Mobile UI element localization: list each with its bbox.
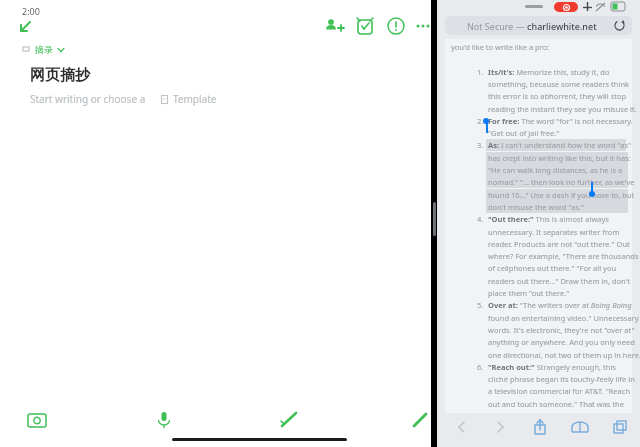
staticText: Its/it's: Memorize this, study it, do <box>488 67 610 77</box>
staticText: As: I can't understand how the word "as" <box>488 140 632 150</box>
button[interactable]: More options <box>411 14 435 38</box>
staticText: found an entertaining video." Unnecessar… <box>488 313 639 323</box>
staticText: place them "out there." <box>488 288 570 298</box>
button[interactable]: Template <box>160 92 217 106</box>
staticText: a television commercial for AT&T. "Reach <box>488 386 631 396</box>
staticText: Start writing or choose a <box>30 92 146 106</box>
staticText: 摘录 <box>35 44 53 55</box>
staticText: 5. <box>477 300 484 310</box>
button[interactable]: 摘录 <box>22 44 65 55</box>
staticText: Over at: "The writers over at Boing Boin… <box>488 300 632 310</box>
staticText: consuming monster. It's dragged out ever… <box>488 423 639 433</box>
staticText: 3. <box>477 140 484 150</box>
staticText: slogan. Now it's grown into an all- <box>488 411 607 421</box>
staticText: 1. <box>477 67 484 77</box>
button[interactable]: Camera <box>25 408 49 432</box>
button[interactable]: Bookmarks <box>569 416 591 438</box>
staticText: "Reach out:" Strangely enough, this <box>488 362 616 372</box>
staticText: Template <box>173 92 217 106</box>
staticText: readers out there…" Draw them in, don't <box>488 276 631 286</box>
button[interactable]: Attach <box>408 408 432 432</box>
button: Back <box>451 416 473 438</box>
staticText: don't misuse the word "as." <box>488 202 585 212</box>
staticText: 2:00 <box>22 5 40 17</box>
button[interactable]: Share <box>529 416 551 438</box>
staticText: you'd like to write like a pro: <box>451 42 550 52</box>
staticText: reader. Products are not "out there." Ou… <box>488 239 630 249</box>
staticText: 6. <box>477 362 484 372</box>
button[interactable]: Back <box>12 14 38 40</box>
staticText: has crept into writing like this, but it… <box>488 153 631 163</box>
staticText: unnecessary. It separates writer from <box>488 227 620 237</box>
button[interactable]: Draw <box>277 408 301 432</box>
staticText: "Out there:" This is almost always <box>488 214 609 224</box>
staticText: 2. <box>477 116 484 126</box>
staticText: 4. <box>477 214 484 224</box>
staticText: Not Secure — charliewhite.net <box>467 20 597 32</box>
staticText: where? For example, "There are thousands <box>488 251 639 261</box>
staticText: nomad." "… then look no further, as we'v… <box>488 177 635 187</box>
staticText: found 10…" Use a dash if you have to, bu… <box>488 190 635 200</box>
button[interactable]: Add people <box>322 14 346 38</box>
staticText: "Get out of jail free." <box>488 128 560 138</box>
button: Forward <box>489 416 511 438</box>
staticText: For free: The word "for" is not necessar… <box>488 116 633 126</box>
staticText: something, because some readers think <box>488 79 630 89</box>
staticText: out and touch someone." That was the <box>488 399 624 409</box>
staticText: words. It's electronic, they're not "ove… <box>488 325 635 335</box>
staticText: of cellphones out there." "For all you <box>488 263 617 273</box>
button[interactable]: Not Secure — charliewhite.net <box>445 16 632 35</box>
button[interactable]: Reminder <box>353 14 377 38</box>
staticText: cliché phrase began its touchy-feely lif… <box>488 374 635 384</box>
staticText: reading the instant they see you misuse … <box>488 104 637 114</box>
staticText: 网页摘抄 <box>30 66 90 85</box>
button[interactable]: Info <box>384 14 408 38</box>
staticText: anything or anywhere. And you only need <box>488 337 635 347</box>
staticText: "He can walk long distances, as he is a <box>488 165 623 175</box>
staticText: one directional, not two of them up in h… <box>488 350 640 360</box>
button[interactable]: Tabs <box>609 416 631 438</box>
staticText: this error is so abhorrent, they will st… <box>488 91 627 101</box>
button[interactable]: Voice <box>152 408 176 432</box>
